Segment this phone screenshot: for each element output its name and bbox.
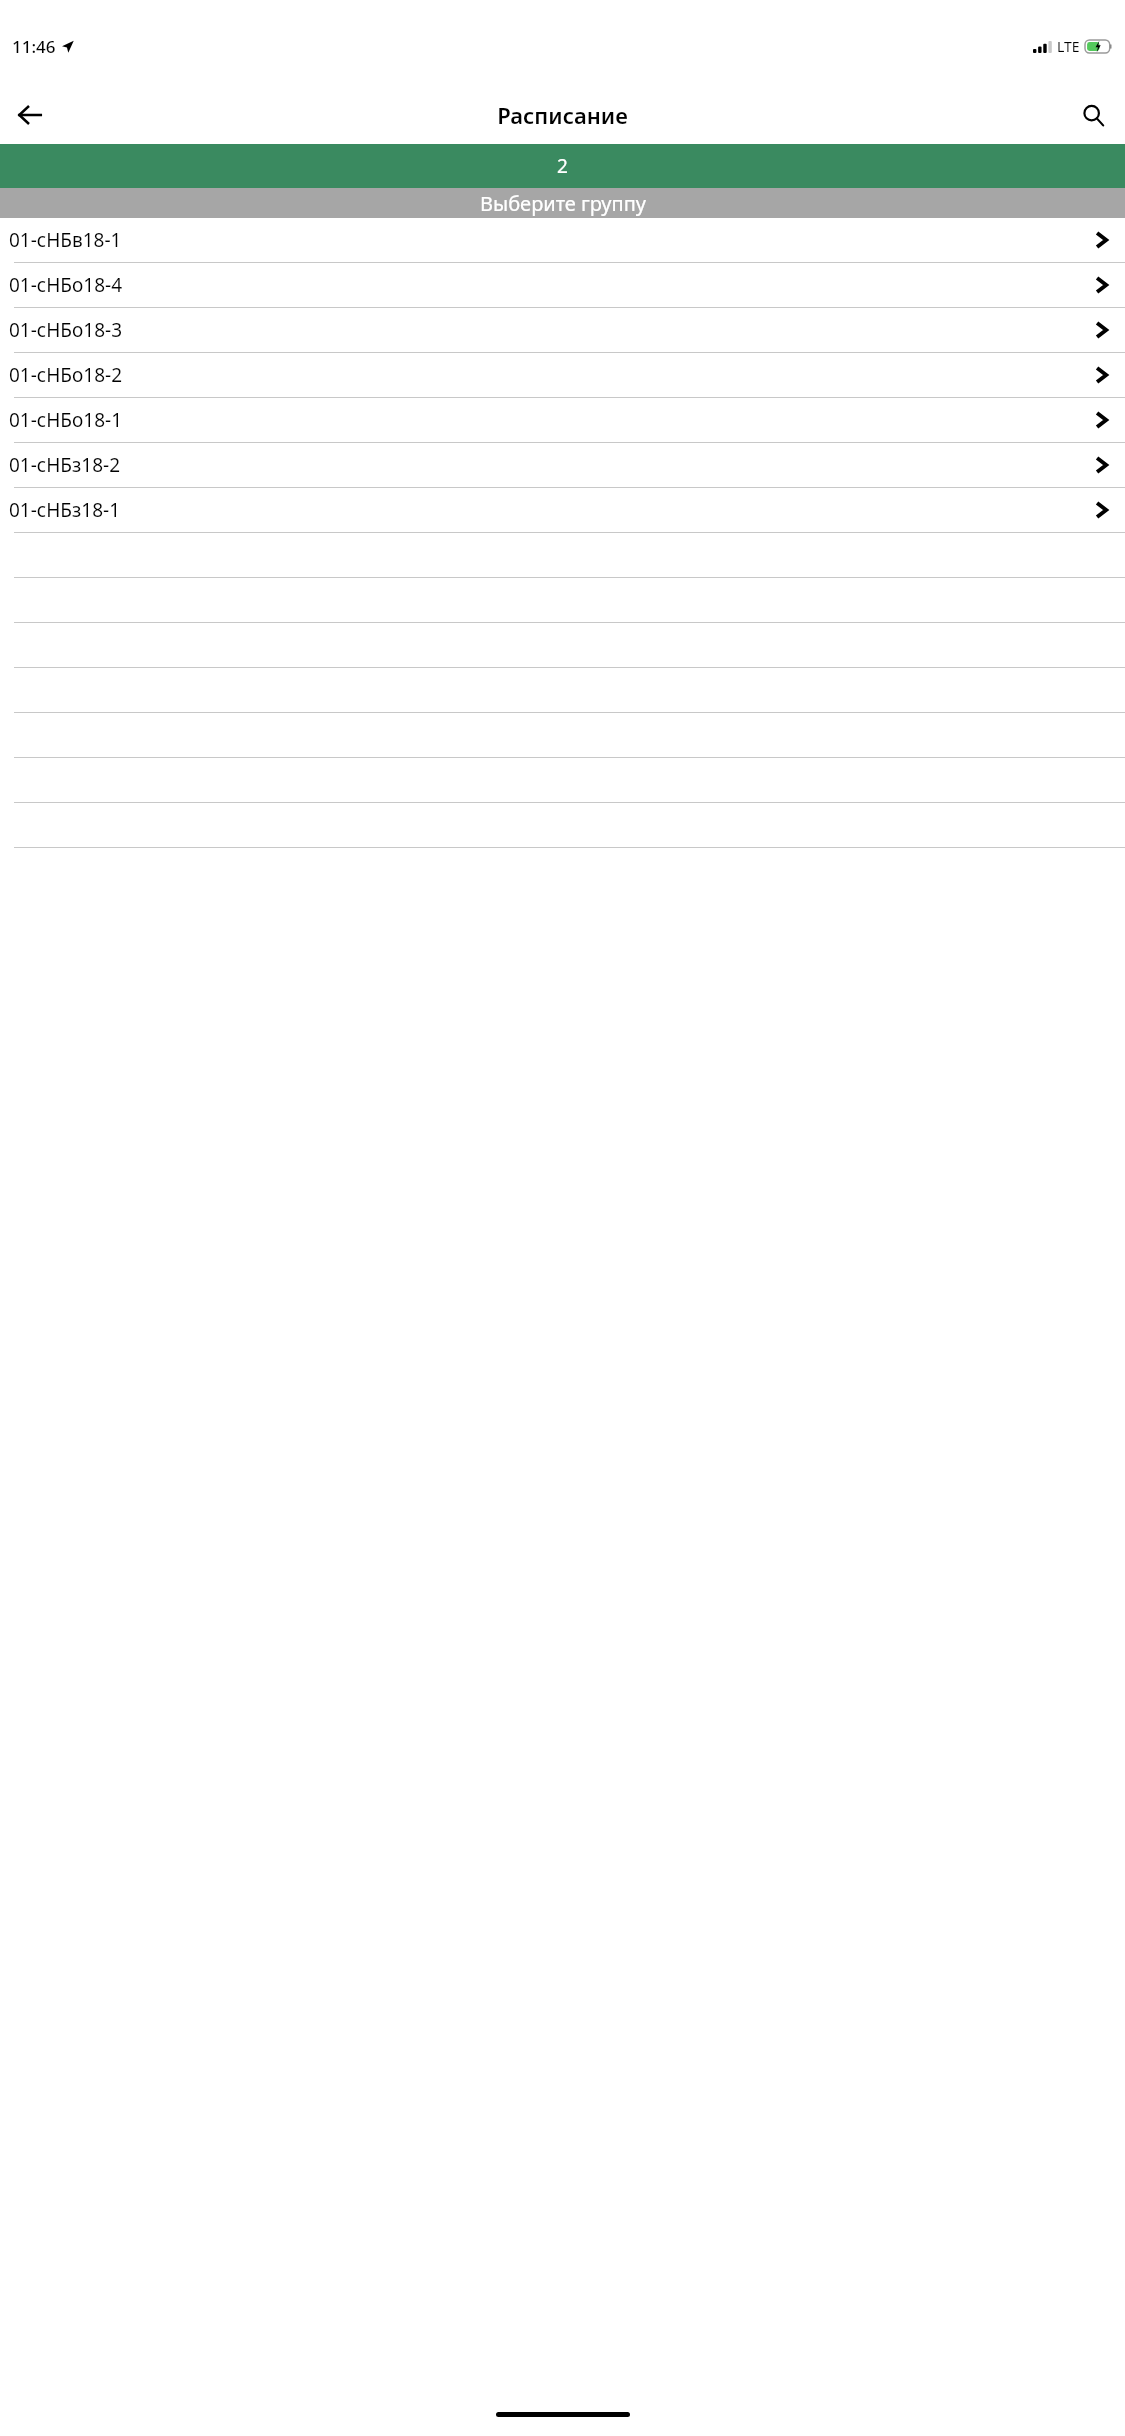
button[interactable]: Back [6,91,54,139]
button[interactable]: 01-сНБв18-1 [0,218,1125,262]
button[interactable]: Search [1069,91,1117,139]
button[interactable]: 01-сНБо18-4 [0,263,1125,307]
staticText: Выберите группу [480,190,646,217]
staticText: 2 [557,153,568,179]
staticText: 01-сНБо18-4 [9,272,1095,298]
staticText: 01-сНБз18-1 [9,497,1095,523]
button[interactable]: 01-сНБо18-3 [0,308,1125,352]
staticText: 01-сНБз18-2 [9,452,1095,478]
button[interactable]: 01-сНБз18-2 [0,443,1125,487]
button[interactable]: 01-сНБз18-1 [0,488,1125,532]
staticText: 01-сНБо18-2 [9,362,1095,388]
staticText: 11:46 [12,35,56,58]
button[interactable]: 01-сНБо18-1 [0,398,1125,442]
staticText: Расписание [497,100,628,130]
staticText: 01-сНБв18-1 [9,227,1095,253]
button[interactable]: 01-сНБо18-2 [0,353,1125,397]
staticText: 01-сНБо18-1 [9,407,1095,433]
staticText: LTE [1057,37,1080,56]
staticText: 01-сНБо18-3 [9,317,1095,343]
